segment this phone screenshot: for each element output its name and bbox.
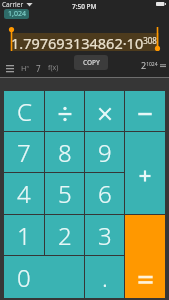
button[interactable]: Functions (45, 58, 61, 78)
staticText: 7 (17, 136, 31, 169)
button[interactable]: 9 (85, 132, 124, 172)
staticText: 5 (58, 177, 72, 210)
staticText: 2 (58, 219, 72, 252)
button[interactable]: 1,024 (4, 9, 29, 19)
button[interactable]: 7 (4, 132, 44, 172)
button[interactable]: Plus (125, 132, 165, 214)
button[interactable]: 1.797693134862·10308 (11, 33, 159, 51)
staticText: 8 (58, 136, 72, 169)
staticText: 4 (17, 177, 31, 210)
staticText: COPY (83, 58, 100, 67)
staticText: 7:50 PM (72, 2, 97, 11)
staticText: 6 (98, 177, 112, 210)
staticText: 1.797693134862·10308 (11, 33, 157, 51)
other: Selection start (9, 27, 14, 51)
staticText: Hn (21, 63, 30, 73)
staticText: 1 (17, 219, 31, 252)
button[interactable]: Exponent (18, 58, 32, 78)
staticText: . (102, 261, 108, 294)
button[interactable]: 5 (45, 173, 84, 214)
staticText: 7 (36, 63, 41, 74)
other: Selection end (155, 27, 160, 51)
button[interactable]: Equals (125, 215, 165, 298)
button[interactable]: Divide (45, 91, 84, 131)
button[interactable]: 3 (85, 215, 124, 255)
button[interactable]: COPY (74, 55, 108, 70)
button[interactable]: Multiply (85, 91, 124, 131)
staticText: f(x) (48, 63, 59, 73)
button[interactable]: Minus (125, 91, 165, 131)
button[interactable]: 0 (4, 256, 84, 298)
staticText: 0 (17, 261, 31, 294)
button[interactable]: 6 (85, 173, 124, 214)
button[interactable]: 1 (4, 215, 44, 255)
staticText: 21024 (141, 59, 158, 71)
button[interactable]: C (4, 91, 44, 131)
staticText: 3 (98, 219, 112, 252)
staticText: 1,024 (8, 9, 26, 19)
button[interactable]: 4 (4, 173, 44, 214)
button[interactable]: Base (32, 58, 45, 78)
button[interactable]: 8 (45, 132, 84, 172)
button[interactable]: 2 (45, 215, 84, 255)
staticText: Carrier (2, 0, 24, 9)
staticText: 9 (98, 136, 112, 169)
button[interactable]: Menu (1, 58, 18, 78)
button[interactable]: . (85, 256, 124, 298)
staticText: C (17, 95, 32, 128)
